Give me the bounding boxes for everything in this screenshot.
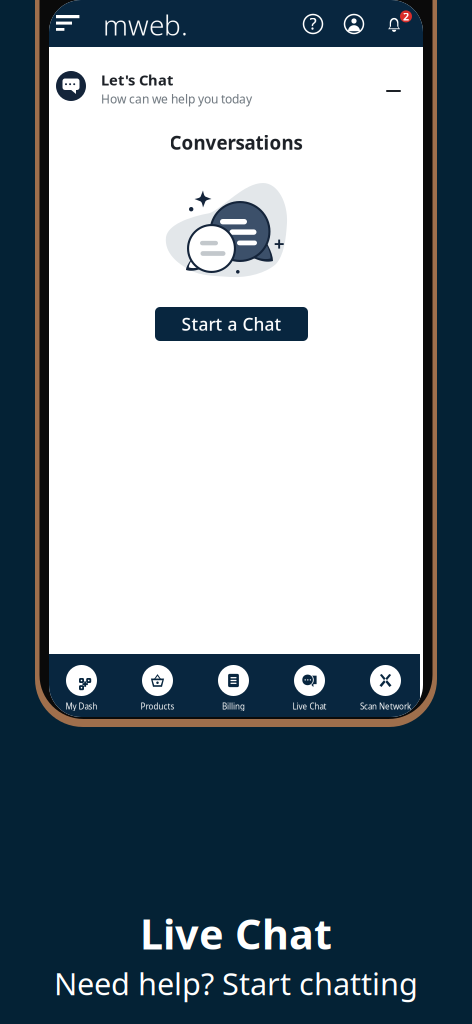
button[interactable]: Live Chat	[271, 653, 347, 713]
button[interactable]: Help	[296, 7, 330, 41]
button[interactable]: My Dash	[43, 653, 119, 713]
staticText: My Dash	[65, 701, 97, 712]
button[interactable]: Menu	[48, 7, 87, 39]
button[interactable]: Start a Chat	[155, 307, 308, 341]
staticText: Conversations	[169, 130, 302, 155]
staticText: mweb.	[103, 6, 188, 43]
staticText: Live Chat	[292, 701, 326, 712]
staticText: Products	[140, 701, 174, 712]
staticText: ?	[309, 13, 316, 34]
staticText: Billing	[222, 701, 245, 712]
button[interactable]: Notifications	[388, 0, 422, 32]
button[interactable]: Minimise	[375, 79, 412, 103]
staticText: Live Chat	[140, 906, 332, 961]
staticText: Start a Chat	[181, 312, 281, 335]
staticText: 2	[403, 9, 409, 23]
staticText: Need help? Start chatting	[54, 963, 418, 1004]
staticText: Scan Network	[360, 701, 411, 712]
button[interactable]: Account	[337, 7, 371, 41]
button[interactable]: Products	[119, 653, 195, 713]
button[interactable]: Scan Network	[347, 653, 423, 713]
button[interactable]: Billing	[195, 653, 271, 713]
staticText: Let's Chat	[101, 70, 173, 89]
staticText: How can we help you today	[101, 91, 252, 107]
